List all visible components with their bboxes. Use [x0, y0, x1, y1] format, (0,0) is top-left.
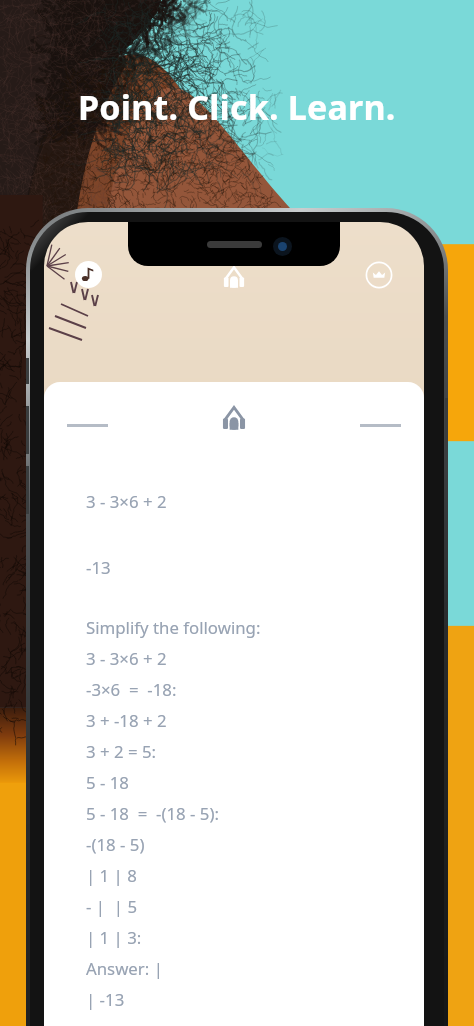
staticText: 5 - 18 = -(18 - 5): — [86, 802, 219, 825]
staticText: - | | 5 — [86, 895, 137, 918]
staticText: | 1 | 8 — [86, 864, 137, 887]
staticText: -13 — [86, 556, 111, 579]
staticText: 5 - 18 — [86, 771, 129, 794]
staticText: | -13 — [86, 988, 125, 1011]
staticText: 3 - 3×6 + 2 — [86, 490, 167, 513]
staticText: -3×6 = -18: — [86, 678, 177, 701]
staticText: Answer: | — [86, 957, 163, 980]
button[interactable]: Audio — [222, 265, 246, 289]
button[interactable]: Music — [75, 261, 102, 288]
staticText: -(18 - 5) — [86, 833, 145, 856]
staticText: | 1 | 3: — [86, 926, 142, 949]
staticText: 3 + 2 = 5: — [86, 740, 157, 763]
button[interactable]: Premium — [365, 261, 393, 289]
button[interactable]: Home — [212, 396, 256, 440]
staticText: 3 + -18 + 2 — [86, 709, 167, 732]
staticText: 3 - 3×6 + 2 — [86, 647, 167, 670]
staticText: Point. Click. Learn. — [78, 84, 396, 130]
staticText: Simplify the following: — [86, 616, 261, 639]
